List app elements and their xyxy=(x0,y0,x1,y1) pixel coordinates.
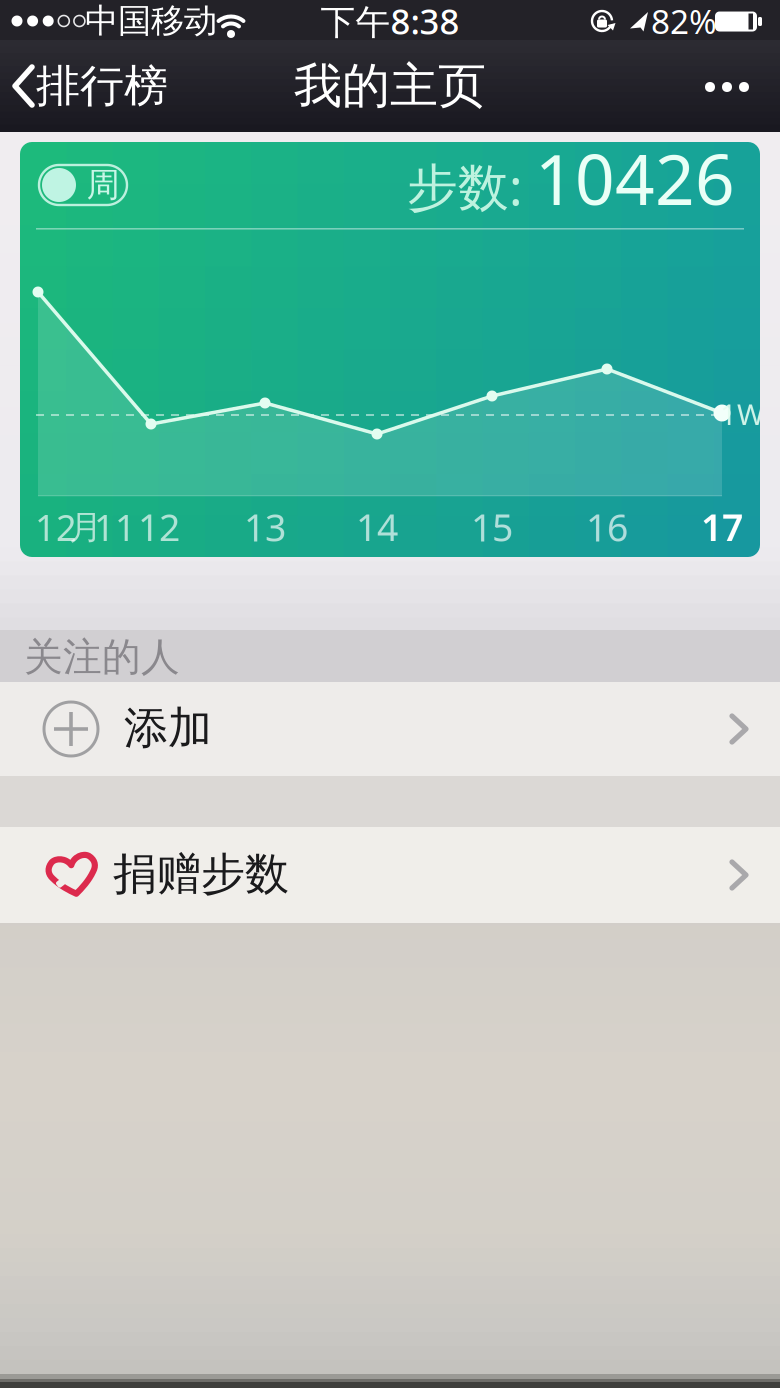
button[interactable]: 更多 xyxy=(687,57,767,117)
staticText: 11 xyxy=(94,503,136,551)
staticText: 月 xyxy=(69,507,102,548)
button[interactable]: 返回排行榜 xyxy=(0,42,200,130)
staticText: 13 xyxy=(244,502,286,552)
staticText: 排行榜 xyxy=(36,59,168,113)
staticText: 15 xyxy=(471,502,513,552)
staticText: 关注的人 xyxy=(24,633,180,681)
staticText: 我的主页 xyxy=(294,56,486,115)
staticText: 12 xyxy=(138,502,180,552)
staticText: 1W xyxy=(720,394,764,433)
button[interactable]: 添加 xyxy=(0,682,780,776)
staticText: 中国移动 xyxy=(85,0,217,41)
staticText: 步数: xyxy=(407,152,523,220)
button[interactable]: 按周显示 xyxy=(39,165,127,205)
staticText: 10426 xyxy=(535,132,735,224)
staticText: 82% xyxy=(651,0,717,43)
staticText: 下午8:38 xyxy=(320,0,459,44)
staticText: 添加 xyxy=(124,701,212,755)
staticText: 16 xyxy=(586,502,628,552)
staticText: 周 xyxy=(86,164,119,205)
button[interactable]: 捐赠步数 xyxy=(0,827,780,923)
staticText: 14 xyxy=(356,502,398,552)
staticText: 12 xyxy=(35,503,77,551)
staticText: 捐赠步数 xyxy=(113,847,289,901)
staticText: 17 xyxy=(701,502,743,552)
